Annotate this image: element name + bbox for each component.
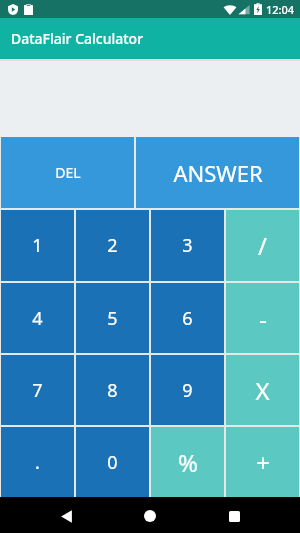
staticText: ANSWER — [173, 158, 263, 188]
staticText: 12:04 — [266, 2, 295, 17]
staticText: 2 — [107, 233, 118, 258]
button[interactable]: 2 — [76, 210, 149, 281]
button[interactable]: 6 — [151, 283, 224, 353]
button[interactable]: 0 — [76, 427, 149, 497]
staticText: X — [255, 374, 270, 407]
staticText: 1 — [32, 233, 43, 258]
staticText: 7 — [32, 378, 43, 403]
staticText: 9 — [182, 378, 193, 403]
button[interactable]: DEL — [1, 137, 134, 208]
staticText: 4 — [32, 306, 43, 331]
staticText: 5 — [107, 306, 118, 331]
button[interactable]: 5 — [76, 283, 149, 353]
staticText: / — [258, 229, 267, 262]
staticText: - — [259, 302, 267, 335]
staticText: + — [256, 446, 270, 479]
button[interactable]: X — [226, 355, 299, 425]
button[interactable]: % — [151, 427, 224, 497]
button[interactable]: Recent apps — [219, 501, 249, 531]
staticText: DEL — [55, 163, 81, 182]
staticText: 6 — [182, 306, 193, 331]
button[interactable]: 4 — [1, 283, 74, 353]
button[interactable]: - — [226, 283, 299, 353]
button[interactable]: 1 — [1, 210, 74, 281]
staticText: 0 — [107, 450, 118, 475]
staticText: DataFlair Calculator — [11, 29, 144, 48]
button[interactable]: + — [226, 427, 299, 497]
button[interactable]: 9 — [151, 355, 224, 425]
staticText: 3 — [182, 233, 193, 258]
button[interactable]: Back — [51, 501, 81, 531]
button[interactable]: 3 — [151, 210, 224, 281]
button[interactable]: 8 — [76, 355, 149, 425]
button[interactable]: 7 — [1, 355, 74, 425]
button[interactable]: / — [226, 210, 299, 281]
staticText: 8 — [107, 378, 118, 403]
staticText: % — [178, 446, 198, 479]
button[interactable]: . — [1, 427, 74, 497]
button[interactable]: Home — [135, 501, 165, 531]
staticText: . — [35, 450, 40, 475]
button[interactable]: ANSWER — [136, 137, 299, 208]
